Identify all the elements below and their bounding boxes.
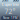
staticText: ooo bbox=[12, 0, 18, 3]
staticText: 72° bbox=[4, 7, 15, 16]
staticText: 9:41 bbox=[1, 0, 8, 3]
staticText: Cupertino bbox=[1, 1, 18, 7]
staticText: 1PM bbox=[11, 16, 17, 20]
staticText: Now bbox=[3, 16, 9, 20]
